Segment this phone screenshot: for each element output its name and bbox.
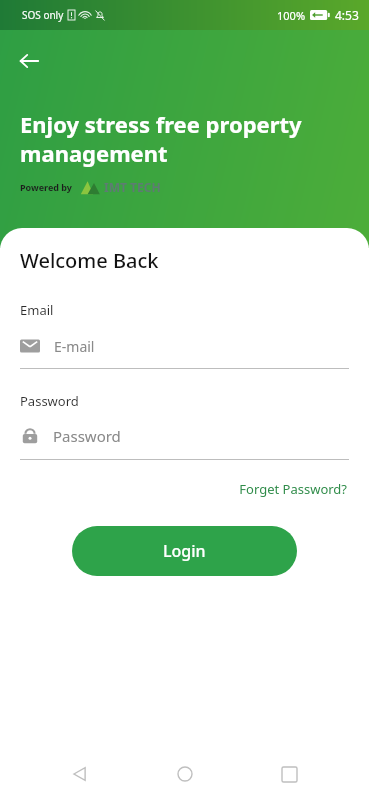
staticText: IMT TECH [104, 179, 161, 195]
staticText: E-mail [54, 337, 95, 356]
button[interactable]: Back [12, 44, 46, 78]
button[interactable]: Login [72, 526, 297, 576]
staticText: Password [20, 392, 79, 410]
staticText: Welcome Back [20, 247, 159, 274]
staticText: Enjoy stress free property management [20, 109, 302, 168]
button[interactable]: Recents [265, 750, 313, 798]
button[interactable]: Password [20, 421, 349, 451]
button[interactable]: Back [56, 750, 104, 798]
staticText: 4:53 [335, 7, 359, 23]
staticText: Password [53, 426, 121, 446]
staticText: Forget Password? [239, 480, 347, 498]
staticText: Login [163, 540, 206, 562]
staticText: Email [20, 301, 54, 319]
button[interactable]: E-mail [20, 332, 349, 360]
button[interactable]: Forget Password? [237, 476, 349, 502]
staticText: 100% [277, 8, 306, 23]
button[interactable]: Home [161, 750, 209, 798]
staticText: Powered by [20, 181, 73, 193]
staticText: SOS only [22, 8, 64, 22]
